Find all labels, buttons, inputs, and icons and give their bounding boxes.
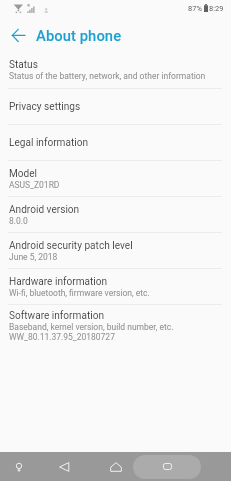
staticText: 8:29 <box>209 4 224 13</box>
button[interactable]: Status <box>0 52 231 88</box>
staticText: Wi-fi, bluetooth, firmware version, etc. <box>9 288 150 298</box>
button[interactable]: Search <box>8 452 29 481</box>
button[interactable]: Software information <box>0 305 231 346</box>
button[interactable]: Hardware information <box>0 269 231 304</box>
staticText: About phone <box>36 27 122 44</box>
staticText: Android version <box>9 204 80 216</box>
button[interactable]: Model <box>0 161 231 196</box>
button[interactable]: Privacy settings <box>0 89 231 124</box>
staticText: 87% <box>188 4 202 13</box>
staticText: ASUS_Z01RD <box>9 180 60 190</box>
button[interactable]: Android security patch level <box>0 233 231 268</box>
button[interactable]: Home <box>105 452 126 481</box>
button[interactable]: Back <box>54 452 75 481</box>
staticText: WW_80.11.37.95_20180727 <box>9 332 115 342</box>
staticText: Privacy settings <box>9 101 81 113</box>
staticText: Software information <box>9 310 104 322</box>
button[interactable]: Legal information <box>0 125 231 160</box>
staticText: Status <box>9 59 38 71</box>
staticText: Legal information <box>9 137 89 149</box>
staticText: Model <box>9 168 38 180</box>
button[interactable]: Recents <box>133 455 201 479</box>
staticText: 8.0.0 <box>9 216 28 226</box>
staticText: Status of the battery, network, and othe… <box>9 71 206 81</box>
staticText: Android security patch level <box>9 240 133 252</box>
button[interactable]: Android version <box>0 197 231 232</box>
button[interactable]: Back <box>5 19 32 47</box>
staticText: June 5, 2018 <box>9 252 58 262</box>
staticText: Hardware information <box>9 276 108 288</box>
staticText: Baseband, kernel version, build number, … <box>9 322 174 332</box>
